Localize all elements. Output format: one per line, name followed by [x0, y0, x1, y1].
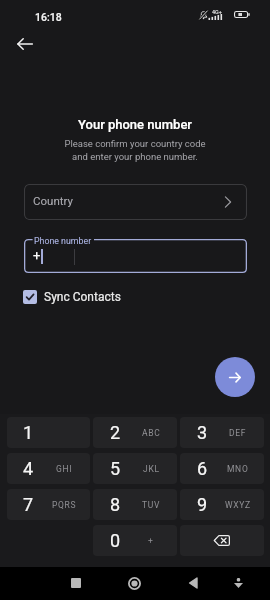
- staticText: 3: [197, 422, 208, 443]
- staticText: Sync Contacts: [44, 290, 121, 304]
- staticText: 1: [23, 422, 34, 443]
- button[interactable]: 6: [180, 453, 264, 484]
- button[interactable]: 1: [7, 417, 90, 448]
- staticText: +: [148, 536, 154, 546]
- staticText: 8: [110, 494, 121, 515]
- staticText: 4: [23, 458, 34, 479]
- staticText: 7: [23, 494, 34, 515]
- button[interactable]: 5: [93, 453, 177, 484]
- staticText: 16:18: [35, 11, 62, 23]
- staticText: MNO: [227, 464, 249, 474]
- staticText: Phone number: [34, 236, 92, 246]
- button[interactable]: 9: [180, 489, 264, 520]
- staticText: 5: [110, 458, 121, 479]
- staticText: 2: [110, 422, 121, 443]
- staticText: 0: [110, 530, 121, 551]
- button[interactable]: Recent apps: [63, 570, 89, 596]
- staticText: Please confirm your country code and ent…: [64, 138, 206, 163]
- button[interactable]: Back: [180, 570, 206, 596]
- staticText: Your phone number: [78, 117, 192, 132]
- staticText: Country: [33, 194, 73, 207]
- button[interactable]: Home: [121, 570, 147, 596]
- button[interactable]: 0: [93, 525, 177, 556]
- button[interactable]: Next: [215, 357, 255, 397]
- button[interactable]: Backspace: [180, 525, 264, 556]
- staticText: JKL: [143, 464, 160, 474]
- button[interactable]: Phone number: [24, 239, 247, 273]
- staticText: GHI: [56, 464, 73, 474]
- button[interactable]: 7: [7, 489, 90, 520]
- button[interactable]: 8: [93, 489, 177, 520]
- staticText: PQRS: [52, 500, 77, 510]
- staticText: 4G+: [212, 9, 222, 15]
- button[interactable]: 3: [180, 417, 264, 448]
- button[interactable]: 2: [93, 417, 177, 448]
- staticText: WXYZ: [225, 500, 251, 510]
- staticText: TUV: [142, 500, 161, 510]
- staticText: ABC: [142, 428, 161, 438]
- staticText: 6: [197, 458, 208, 479]
- staticText: DEF: [229, 428, 247, 438]
- button[interactable]: Country: [24, 184, 247, 220]
- button[interactable]: Sync Contacts: [23, 290, 121, 304]
- button[interactable]: Back: [12, 31, 38, 57]
- staticText: 9: [197, 494, 208, 515]
- button[interactable]: Hide keyboard: [225, 570, 251, 596]
- staticText: +: [33, 248, 41, 263]
- button[interactable]: 4: [7, 453, 90, 484]
